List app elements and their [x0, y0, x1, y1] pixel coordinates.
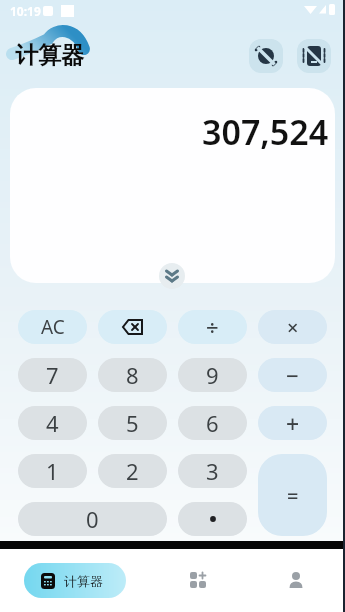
button[interactable]: − — [258, 358, 327, 392]
button[interactable]: 2 — [98, 454, 167, 488]
button[interactable] — [180, 562, 216, 598]
button[interactable]: 5 — [98, 406, 167, 440]
button[interactable]: × — [258, 310, 327, 344]
button[interactable] — [249, 39, 283, 73]
staticText: 计算器 — [64, 573, 103, 589]
button[interactable]: 4 — [18, 406, 87, 440]
button[interactable]: 0 — [18, 502, 167, 536]
staticText: 2 — [126, 456, 139, 486]
staticText: 0 — [86, 504, 99, 534]
staticText: AC — [41, 314, 65, 340]
staticText: 1 — [46, 456, 59, 486]
staticText: 6 — [206, 408, 219, 438]
button[interactable]: = — [258, 454, 327, 536]
button[interactable]: 8 — [98, 358, 167, 392]
staticText: − — [286, 360, 299, 390]
button[interactable] — [98, 310, 167, 344]
button[interactable]: 3 — [178, 454, 247, 488]
staticText: 307,524 — [202, 109, 329, 155]
staticText: 5 — [126, 408, 139, 438]
button[interactable]: 1 — [18, 454, 87, 488]
staticText: 4 — [46, 408, 59, 438]
button[interactable] — [178, 502, 247, 536]
staticText: 计算器 — [15, 41, 84, 70]
button[interactable]: ÷ — [178, 310, 247, 344]
button[interactable] — [159, 263, 185, 289]
button[interactable]: + — [258, 406, 327, 440]
staticText: × — [287, 314, 299, 341]
staticText: 8 — [126, 360, 139, 390]
button[interactable] — [278, 562, 314, 598]
button[interactable]: 计算器 — [24, 563, 126, 598]
staticText: ÷ — [206, 312, 219, 342]
button[interactable]: 9 — [178, 358, 247, 392]
staticText: 7 — [46, 360, 59, 390]
staticText: = — [287, 482, 299, 509]
button[interactable] — [297, 39, 331, 73]
staticText: 10:19 — [10, 3, 41, 19]
button[interactable]: AC — [18, 310, 87, 344]
staticText: + — [286, 408, 300, 439]
button[interactable]: 7 — [18, 358, 87, 392]
staticText: 3 — [206, 456, 219, 486]
button[interactable]: 6 — [178, 406, 247, 440]
staticText: 9 — [206, 360, 219, 390]
